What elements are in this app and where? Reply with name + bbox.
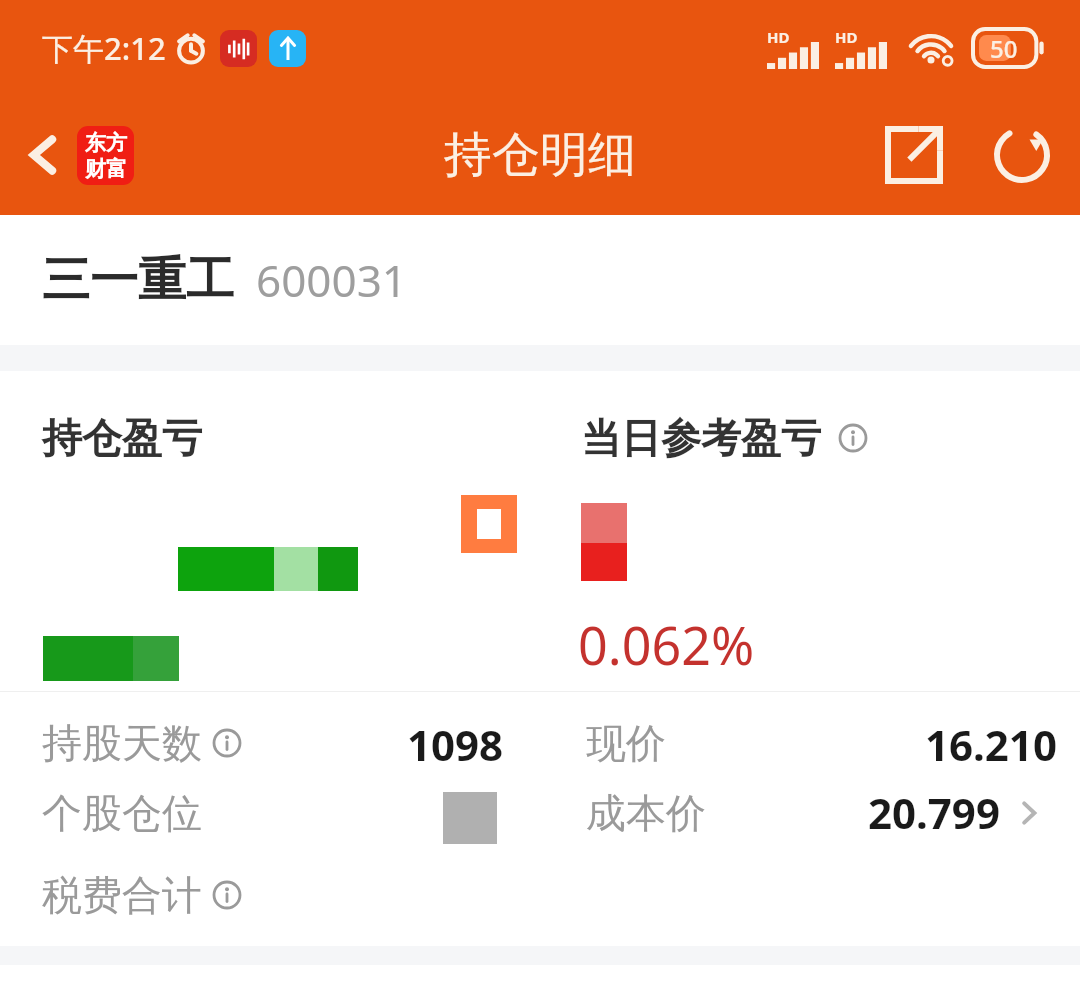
button[interactable]: 分享 <box>872 113 956 197</box>
staticText: 持仓盈亏 <box>42 413 202 463</box>
button[interactable]: 说明 <box>833 418 873 458</box>
staticText: 0.062% <box>578 609 755 680</box>
staticText: 当日参考盈亏 <box>581 413 821 463</box>
staticText: 50 <box>990 32 1018 65</box>
button[interactable]: 刷新 <box>980 113 1064 197</box>
other: 成本价详情 <box>1012 796 1046 830</box>
staticText: 持仓明细 <box>444 125 636 185</box>
button[interactable]: 20.799 <box>868 784 1046 841</box>
staticText: HD <box>767 27 790 47</box>
button[interactable]: 东方财富 <box>77 126 134 185</box>
staticText: 三一重工 <box>42 250 234 310</box>
staticText: 税费合计 <box>42 870 202 920</box>
staticText: 财富 <box>85 156 127 182</box>
staticText: 成本价 <box>586 788 706 838</box>
staticText: HD <box>835 27 858 47</box>
staticText: 600031 <box>256 250 408 310</box>
staticText: 个股仓位 <box>42 788 202 838</box>
staticText: 东方 <box>85 130 127 156</box>
button[interactable]: 返回 <box>8 120 78 190</box>
staticText: 现价 <box>586 718 666 768</box>
staticText: 下午2:12 <box>42 27 166 69</box>
staticText: 持股天数 <box>42 718 202 768</box>
staticText: 1098 <box>407 716 504 773</box>
staticText: 20.799 <box>868 784 1000 841</box>
staticText: 16.210 <box>925 716 1057 773</box>
